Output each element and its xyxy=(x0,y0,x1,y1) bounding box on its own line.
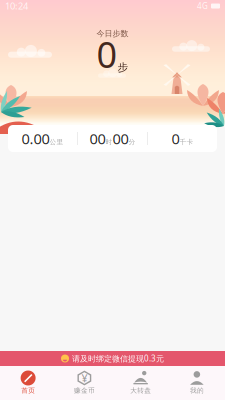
staticText: 今日步数 xyxy=(96,29,128,38)
staticText: 0 xyxy=(96,30,117,78)
staticText: 千卡 xyxy=(179,138,193,146)
staticText: 时 xyxy=(105,138,112,146)
staticText: 步 xyxy=(117,61,128,74)
staticText: 0 xyxy=(171,129,179,148)
button[interactable]: 请及时绑定微信提现0.3元 xyxy=(0,351,225,366)
staticText: 分 xyxy=(128,138,135,146)
button[interactable]: 大转盘 xyxy=(112,366,169,399)
staticText: 00 xyxy=(112,129,128,148)
button[interactable]: 首页 xyxy=(0,366,56,399)
staticText: ¥ xyxy=(81,371,87,385)
staticText: 赚金币 xyxy=(74,386,95,395)
staticText: 请及时绑定微信提现0.3元 xyxy=(72,353,164,364)
staticText: 我的 xyxy=(190,386,204,395)
staticText: 大转盘 xyxy=(130,386,151,395)
staticText: 首页 xyxy=(21,386,35,395)
staticText: 4G xyxy=(197,1,208,11)
staticText: 00 xyxy=(89,129,105,148)
staticText: 0.00 xyxy=(21,129,49,148)
button[interactable]: 我的 xyxy=(169,366,225,399)
staticText: 10:24 xyxy=(5,0,28,12)
button[interactable]: ¥ xyxy=(56,366,112,399)
staticText: 公里 xyxy=(49,138,63,146)
